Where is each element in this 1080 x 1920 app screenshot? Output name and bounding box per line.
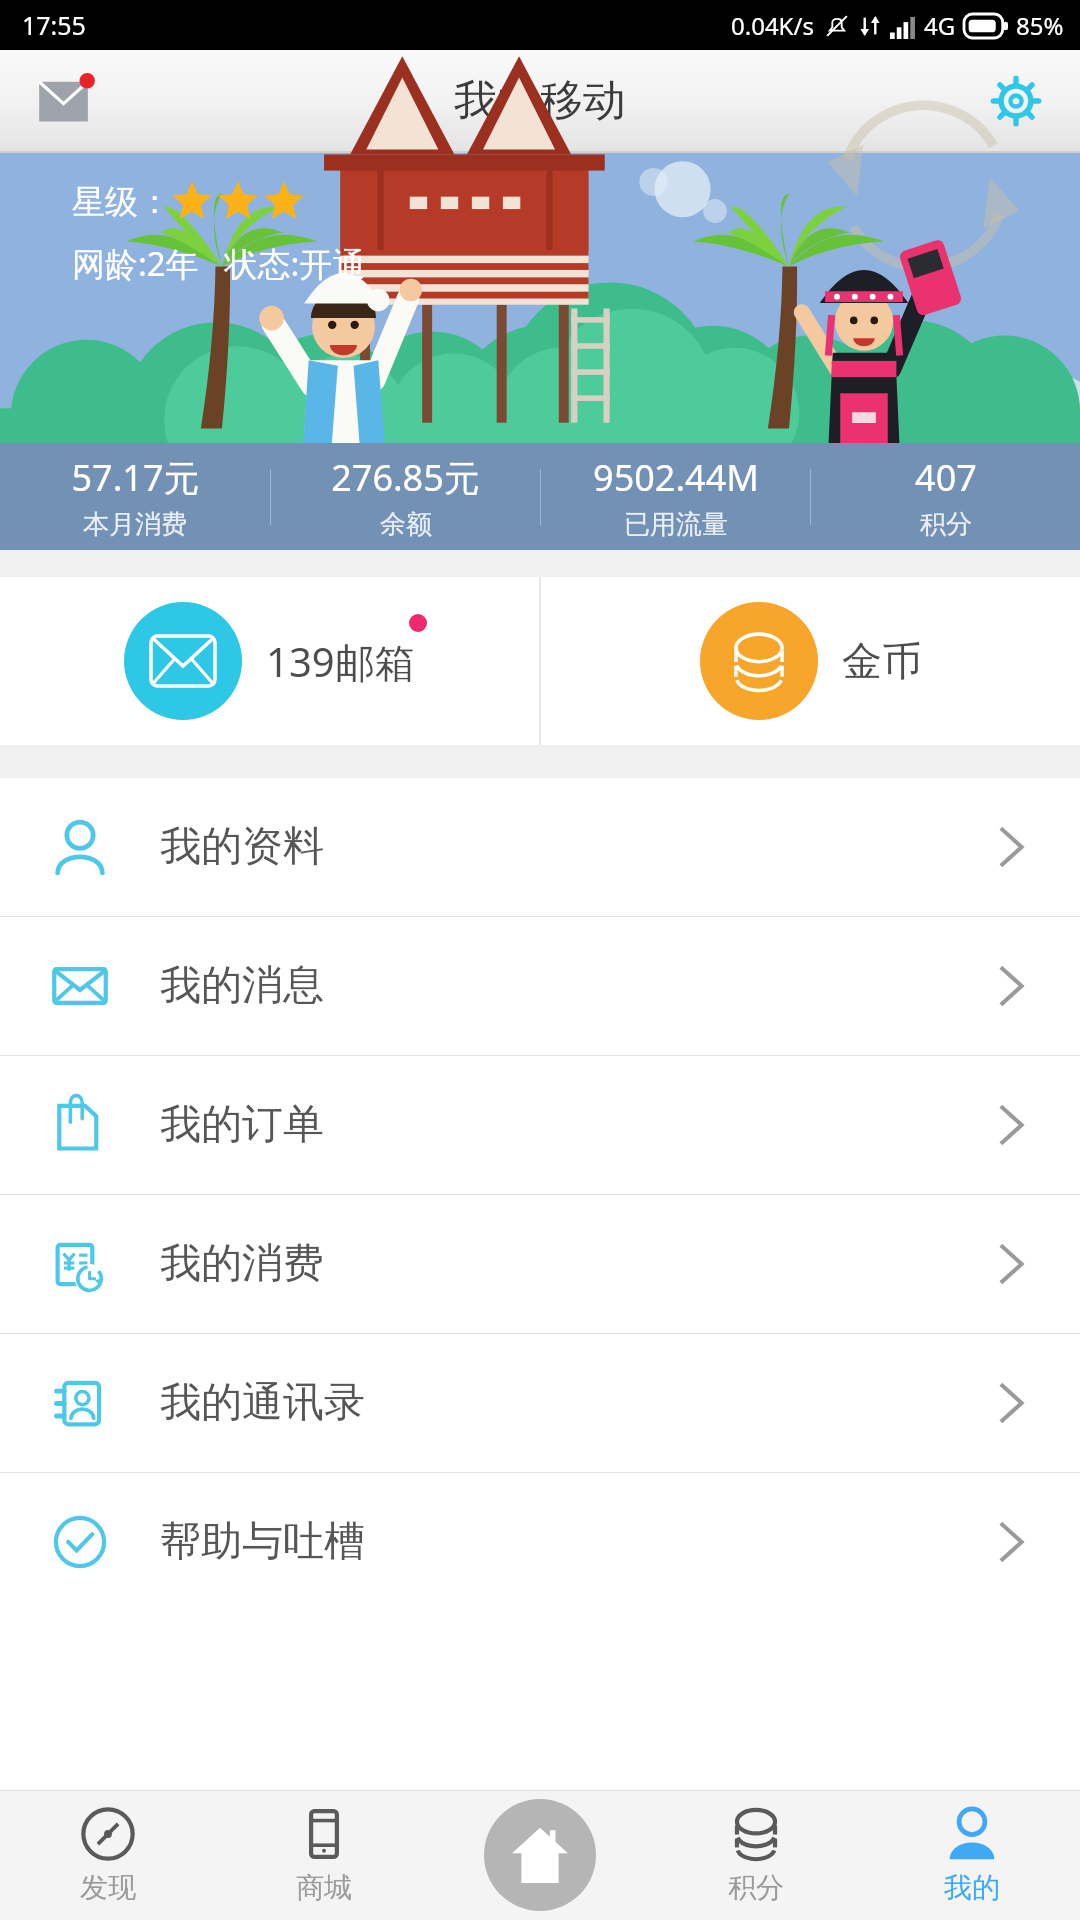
staticText: 余额 — [380, 508, 432, 541]
button[interactable]: 我的 — [864, 1790, 1080, 1920]
button[interactable]: Messages — [30, 63, 106, 139]
staticText: 139邮箱 — [266, 634, 415, 689]
button[interactable]: 139邮箱 — [0, 577, 539, 745]
staticText: 17:55 — [22, 8, 86, 42]
button[interactable]: 我的订单 — [0, 1056, 1080, 1194]
staticText: 407 — [915, 453, 977, 502]
button[interactable]: 9502.44M — [541, 453, 810, 541]
button[interactable]: 我的通讯录 — [0, 1334, 1080, 1472]
staticText: 积分 — [920, 508, 972, 541]
button[interactable]: 276.85元 — [271, 453, 540, 541]
button[interactable]: 我的消息 — [0, 917, 1080, 1055]
staticText: 商城 — [296, 1870, 352, 1905]
button[interactable]: 积分 — [648, 1790, 864, 1920]
staticText: 57.17元 — [71, 453, 200, 502]
staticText: 我的订单 — [160, 1099, 324, 1151]
staticText: 本月消费 — [83, 508, 187, 541]
staticText: 我的消息 — [160, 960, 324, 1012]
button[interactable]: 407 — [811, 453, 1080, 541]
staticText: 276.85元 — [331, 453, 480, 502]
button[interactable]: Home — [432, 1790, 648, 1920]
staticText: 我的 — [944, 1870, 1000, 1905]
staticText: 金币 — [842, 636, 922, 686]
staticText: 网龄:2年 状态:开通 — [72, 241, 366, 286]
button[interactable]: 商城 — [216, 1790, 432, 1920]
staticText: 9502.44M — [593, 453, 759, 502]
staticText: 我的消费 — [160, 1238, 324, 1290]
staticText: 4G — [924, 9, 956, 42]
staticText: 我的资料 — [160, 821, 324, 873]
staticText: 帮助与吐槽 — [160, 1516, 365, 1568]
button[interactable]: Settings — [978, 63, 1054, 139]
staticText: 85% — [1016, 9, 1064, 42]
staticText: 已用流量 — [624, 508, 728, 541]
staticText: 发现 — [80, 1870, 136, 1905]
button[interactable]: 57.17元 — [0, 453, 270, 541]
button[interactable]: 我的资料 — [0, 778, 1080, 916]
staticText: 我的移动 — [454, 74, 626, 128]
button[interactable]: 金币 — [541, 577, 1080, 745]
staticText: 我的通讯录 — [160, 1377, 365, 1429]
staticText: 0.04K/s — [731, 9, 814, 42]
button[interactable]: 发现 — [0, 1790, 216, 1920]
button[interactable]: 帮助与吐槽 — [0, 1473, 1080, 1611]
button[interactable]: 我的消费 — [0, 1195, 1080, 1333]
staticText: 星级： — [72, 181, 171, 223]
staticText: 积分 — [728, 1870, 784, 1905]
